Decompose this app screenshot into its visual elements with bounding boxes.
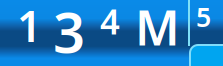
staticText: 5 — [196, 0, 211, 34]
staticText: 3 — [53, 0, 85, 66]
staticText: 1 — [17, 0, 41, 54]
staticText: 4 — [100, 0, 120, 44]
staticText: M — [135, 0, 180, 59]
